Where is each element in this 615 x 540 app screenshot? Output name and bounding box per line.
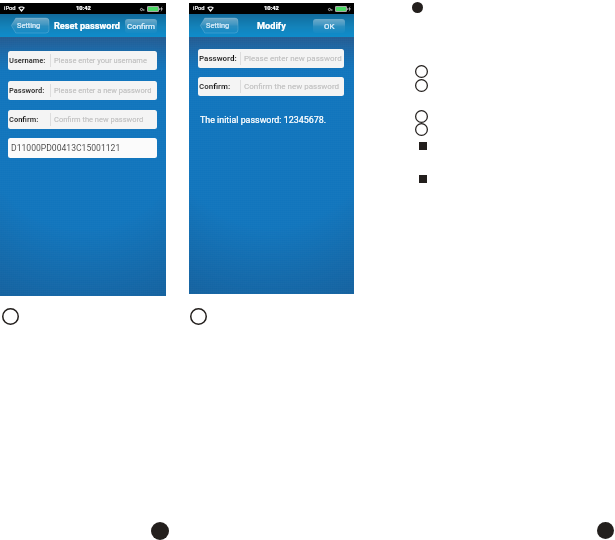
- staticText: 10:42: [76, 5, 91, 12]
- staticText: Please enter a new password: [54, 86, 152, 95]
- staticText: Confirm the new password: [54, 115, 144, 124]
- staticText: iPod: [4, 5, 16, 12]
- staticText: Setting: [206, 21, 230, 30]
- button[interactable]: Confirm: [125, 19, 157, 33]
- button[interactable]: Password:: [8, 81, 157, 100]
- staticText: D11000PD00413C15001121: [11, 143, 121, 153]
- staticText: Confirm: [127, 22, 155, 31]
- staticText: Please enter your username: [54, 56, 147, 65]
- staticText: Username:: [9, 56, 46, 65]
- staticText: Password:: [199, 54, 237, 63]
- staticText: 10:42: [264, 5, 279, 12]
- staticText: Setting: [17, 21, 41, 30]
- button[interactable]: Setting: [11, 18, 49, 33]
- staticText: Modify: [257, 20, 286, 31]
- button[interactable]: Setting: [200, 18, 238, 33]
- button[interactable]: Confirm:: [198, 77, 344, 96]
- button[interactable]: Password:: [198, 49, 344, 68]
- staticText: Confirm the new password: [244, 82, 340, 91]
- staticText: OK: [324, 22, 335, 31]
- staticText: Reset password: [54, 20, 120, 31]
- staticText: Confirm:: [199, 82, 231, 91]
- button[interactable]: Username:: [8, 51, 157, 70]
- button[interactable]: OK: [313, 19, 345, 33]
- staticText: iPod: [193, 5, 205, 12]
- staticText: Confirm:: [9, 115, 39, 124]
- staticText: Please enter new password: [244, 54, 342, 63]
- button[interactable]: D11000PD00413C15001121: [8, 138, 157, 158]
- button[interactable]: Confirm:: [8, 110, 157, 129]
- staticText: Password:: [9, 86, 45, 95]
- staticText: The initial password: 12345678.: [200, 115, 327, 125]
